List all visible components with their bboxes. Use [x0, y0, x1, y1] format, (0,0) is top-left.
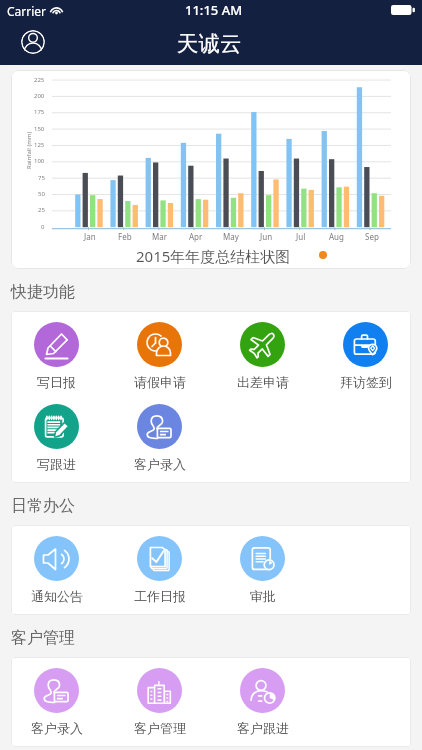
staticText: Carrier	[7, 3, 47, 19]
staticText: 客户管理	[11, 628, 75, 648]
button[interactable]: 工作日报	[108, 529, 211, 611]
staticText: 225	[34, 76, 45, 84]
staticText: 天诚云	[177, 30, 242, 57]
staticText: 客户录入	[31, 720, 83, 736]
staticText: 0	[41, 223, 45, 231]
button[interactable]: 拜访签到	[314, 315, 411, 397]
staticText: May	[223, 231, 239, 242]
button[interactable]: 出差申请	[211, 315, 314, 397]
staticText: 工作日报	[134, 588, 186, 604]
staticText: Jul	[296, 231, 306, 242]
staticText: 出差申请	[237, 374, 289, 390]
staticText: 75	[38, 174, 45, 182]
staticText: 请假申请	[134, 374, 186, 390]
staticText: Rainfall (mm)	[25, 131, 33, 169]
staticText: 拜访签到	[340, 374, 392, 390]
staticText: 11:15 AM	[185, 1, 243, 19]
button[interactable]: 请假申请	[108, 315, 211, 397]
staticText: 175	[34, 108, 45, 116]
staticText: 25	[38, 206, 45, 214]
staticText: 2015年年度总结柱状图	[136, 246, 291, 266]
staticText: 200	[34, 92, 45, 100]
staticText: 快捷功能	[11, 282, 75, 302]
staticText: 客户录入	[134, 456, 186, 472]
staticText: Jan	[84, 231, 96, 242]
button[interactable]: 写跟进	[11, 397, 108, 479]
staticText: Jun	[260, 231, 273, 242]
staticText: 客户管理	[134, 720, 186, 736]
staticText: 125	[34, 141, 45, 149]
staticText: Sep	[365, 231, 379, 242]
staticText: 审批	[250, 588, 276, 604]
staticText: 通知公告	[31, 588, 83, 604]
staticText: Aug	[329, 231, 344, 242]
button[interactable]: 通知公告	[11, 529, 108, 611]
button[interactable]: 审批	[211, 529, 314, 611]
staticText: 写跟进	[37, 456, 76, 472]
button[interactable]: 客户管理	[108, 661, 211, 743]
staticText: 写日报	[37, 374, 76, 390]
staticText: Apr	[189, 231, 203, 242]
staticText: Mar	[152, 231, 168, 242]
button[interactable]: 客户录入	[11, 661, 108, 743]
button[interactable]: 客户跟进	[211, 661, 314, 743]
button[interactable]: 客户录入	[108, 397, 211, 479]
staticText: 日常办公	[11, 496, 75, 516]
staticText: 100	[34, 157, 45, 165]
staticText: 客户跟进	[237, 720, 289, 736]
button[interactable]: 写日报	[11, 315, 108, 397]
staticText: 150	[34, 125, 45, 133]
button[interactable]: Profile	[21, 30, 45, 54]
staticText: 50	[38, 190, 45, 198]
staticText: Feb	[118, 231, 132, 242]
